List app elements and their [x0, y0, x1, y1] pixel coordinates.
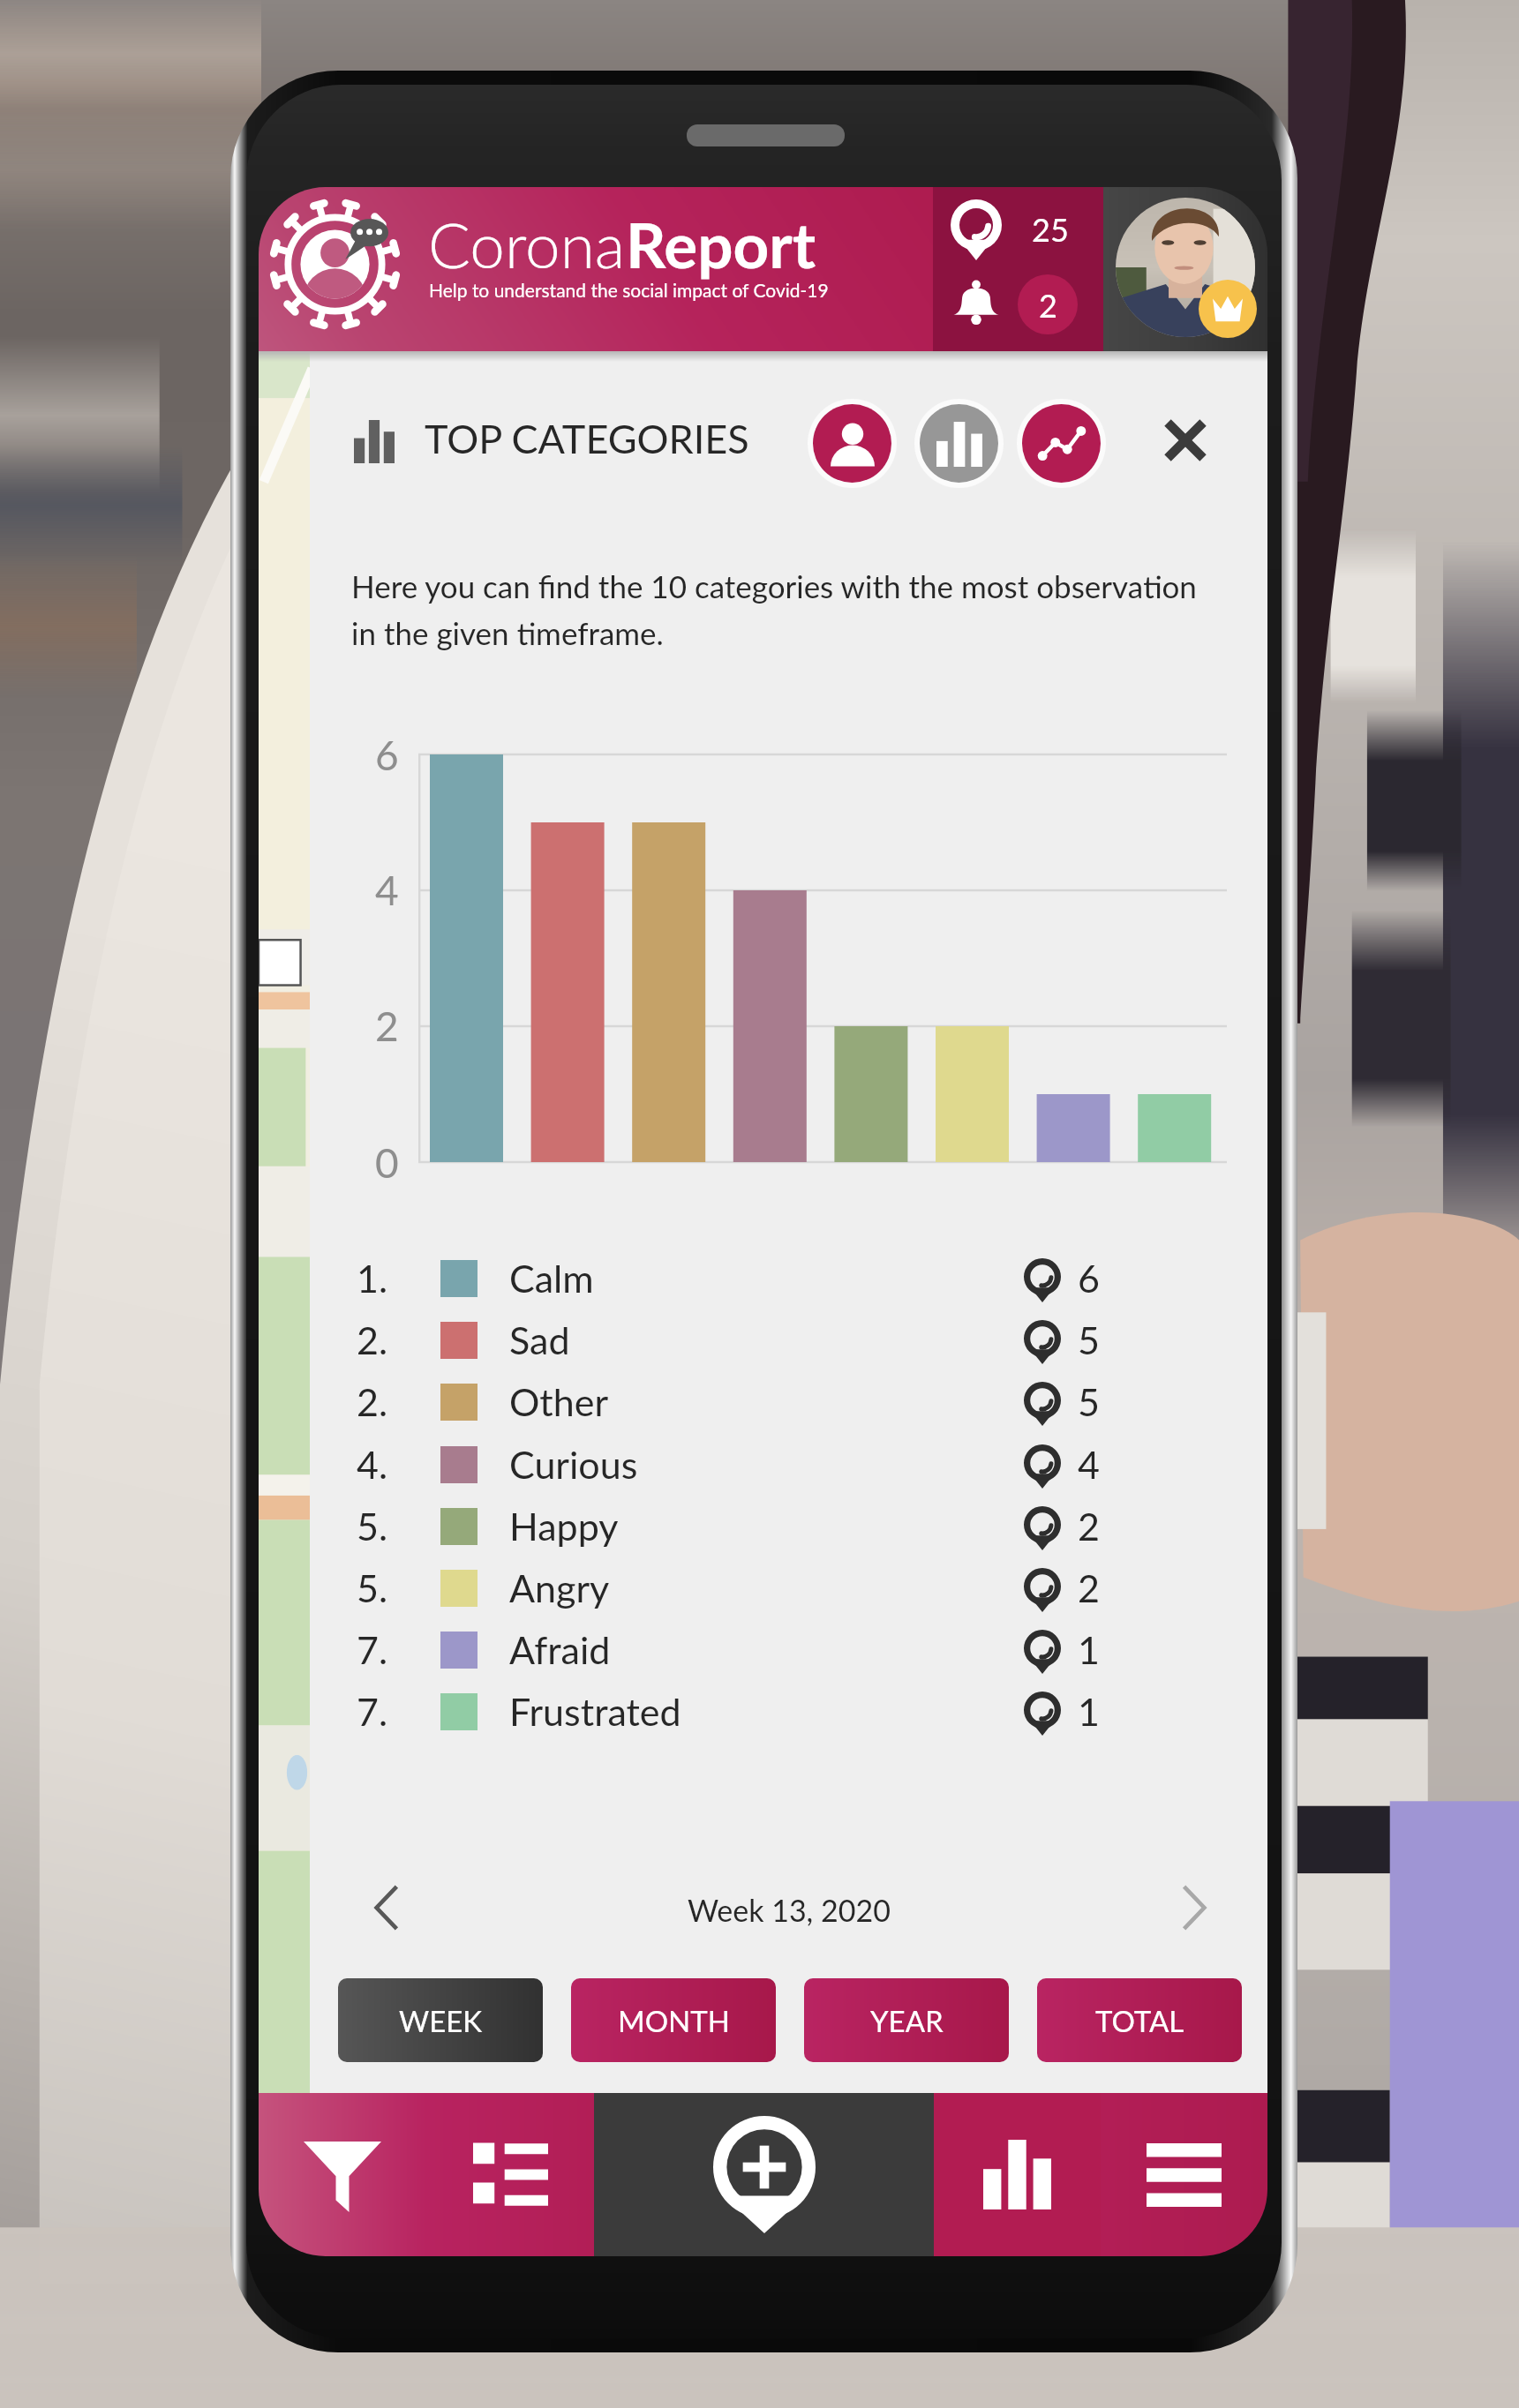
staticText: 6 — [1078, 1256, 1100, 1302]
button[interactable]: YEAR — [804, 1978, 1009, 2062]
staticText: 1. — [357, 1256, 388, 1302]
button[interactable]: Statistics — [934, 2093, 1101, 2256]
staticText: Here you can find the 10 categories with… — [351, 567, 1225, 651]
button[interactable]: 5. — [344, 1496, 1227, 1557]
button[interactable]: Observations and notifications — [933, 187, 1103, 351]
button[interactable]: 5. — [344, 1557, 1227, 1619]
button[interactable]: List — [426, 2093, 594, 2256]
staticText: Corona — [428, 206, 626, 281]
button[interactable]: Filter — [259, 2093, 426, 2256]
button[interactable]: Previous week — [353, 1874, 420, 1941]
button[interactable]: Add observation — [594, 2093, 934, 2256]
button[interactable]: TOTAL — [1037, 1978, 1242, 2062]
staticText: YEAR — [870, 2003, 944, 2038]
button[interactable]: 1. — [344, 1248, 1227, 1309]
staticText: 4 — [1078, 1442, 1100, 1488]
button[interactable]: 4. — [344, 1434, 1227, 1496]
staticText: Afraid — [509, 1627, 611, 1673]
staticText: Frustrated — [509, 1689, 681, 1735]
staticText: Curious — [509, 1442, 638, 1488]
button[interactable]: Menu — [1101, 2093, 1267, 2256]
button[interactable]: 7. — [344, 1681, 1227, 1743]
staticText: 7. — [357, 1689, 388, 1735]
staticText: Happy — [509, 1504, 619, 1549]
button[interactable]: 7. — [344, 1619, 1227, 1681]
button[interactable]: Profile — [1103, 187, 1267, 351]
staticText: 2. — [357, 1317, 388, 1363]
button[interactable]: Next week — [1161, 1874, 1228, 1941]
button[interactable]: WEEK — [338, 1978, 543, 2062]
staticText: Other — [509, 1379, 609, 1425]
staticText: 4 — [375, 866, 399, 914]
staticText: TOTAL — [1095, 2003, 1184, 2038]
staticText: 2 — [1078, 1504, 1100, 1549]
staticText: 2 — [1039, 286, 1057, 324]
button[interactable]: 2. — [344, 1371, 1227, 1433]
staticText: 7. — [357, 1627, 388, 1673]
staticText: 0 — [375, 1138, 399, 1187]
button[interactable] — [259, 187, 933, 351]
staticText: 5. — [357, 1504, 388, 1549]
staticText: Sad — [509, 1317, 570, 1363]
staticText: 2 — [375, 1001, 399, 1050]
button[interactable]: Close — [1147, 401, 1224, 479]
staticText: 1 — [1078, 1689, 1100, 1735]
staticText: Report — [626, 206, 816, 281]
staticText: MONTH — [618, 2003, 730, 2038]
staticText: TOP CATEGORIES — [425, 415, 749, 462]
button[interactable]: Profile — [806, 397, 899, 490]
staticText: Help to understand the social impact of … — [429, 279, 829, 301]
button[interactable]: 2. — [344, 1309, 1227, 1371]
staticText: 25 — [1032, 210, 1069, 248]
staticText: Week 13, 2020 — [688, 1892, 891, 1928]
staticText: Angry — [509, 1565, 610, 1611]
staticText: 4. — [357, 1442, 388, 1488]
button[interactable]: MONTH — [571, 1978, 776, 2062]
button[interactable]: Bar chart — [913, 397, 1005, 490]
staticText: 5. — [357, 1565, 388, 1611]
staticText: WEEK — [399, 2003, 483, 2038]
staticText: Calm — [509, 1256, 594, 1302]
button[interactable]: Line chart — [1015, 397, 1108, 490]
staticText: 5 — [1078, 1317, 1100, 1363]
staticText: 5 — [1078, 1379, 1100, 1425]
staticText: 1 — [1078, 1627, 1100, 1673]
staticText: 2. — [357, 1379, 388, 1425]
staticText: 2 — [1078, 1565, 1100, 1611]
staticText: 6 — [375, 731, 399, 779]
